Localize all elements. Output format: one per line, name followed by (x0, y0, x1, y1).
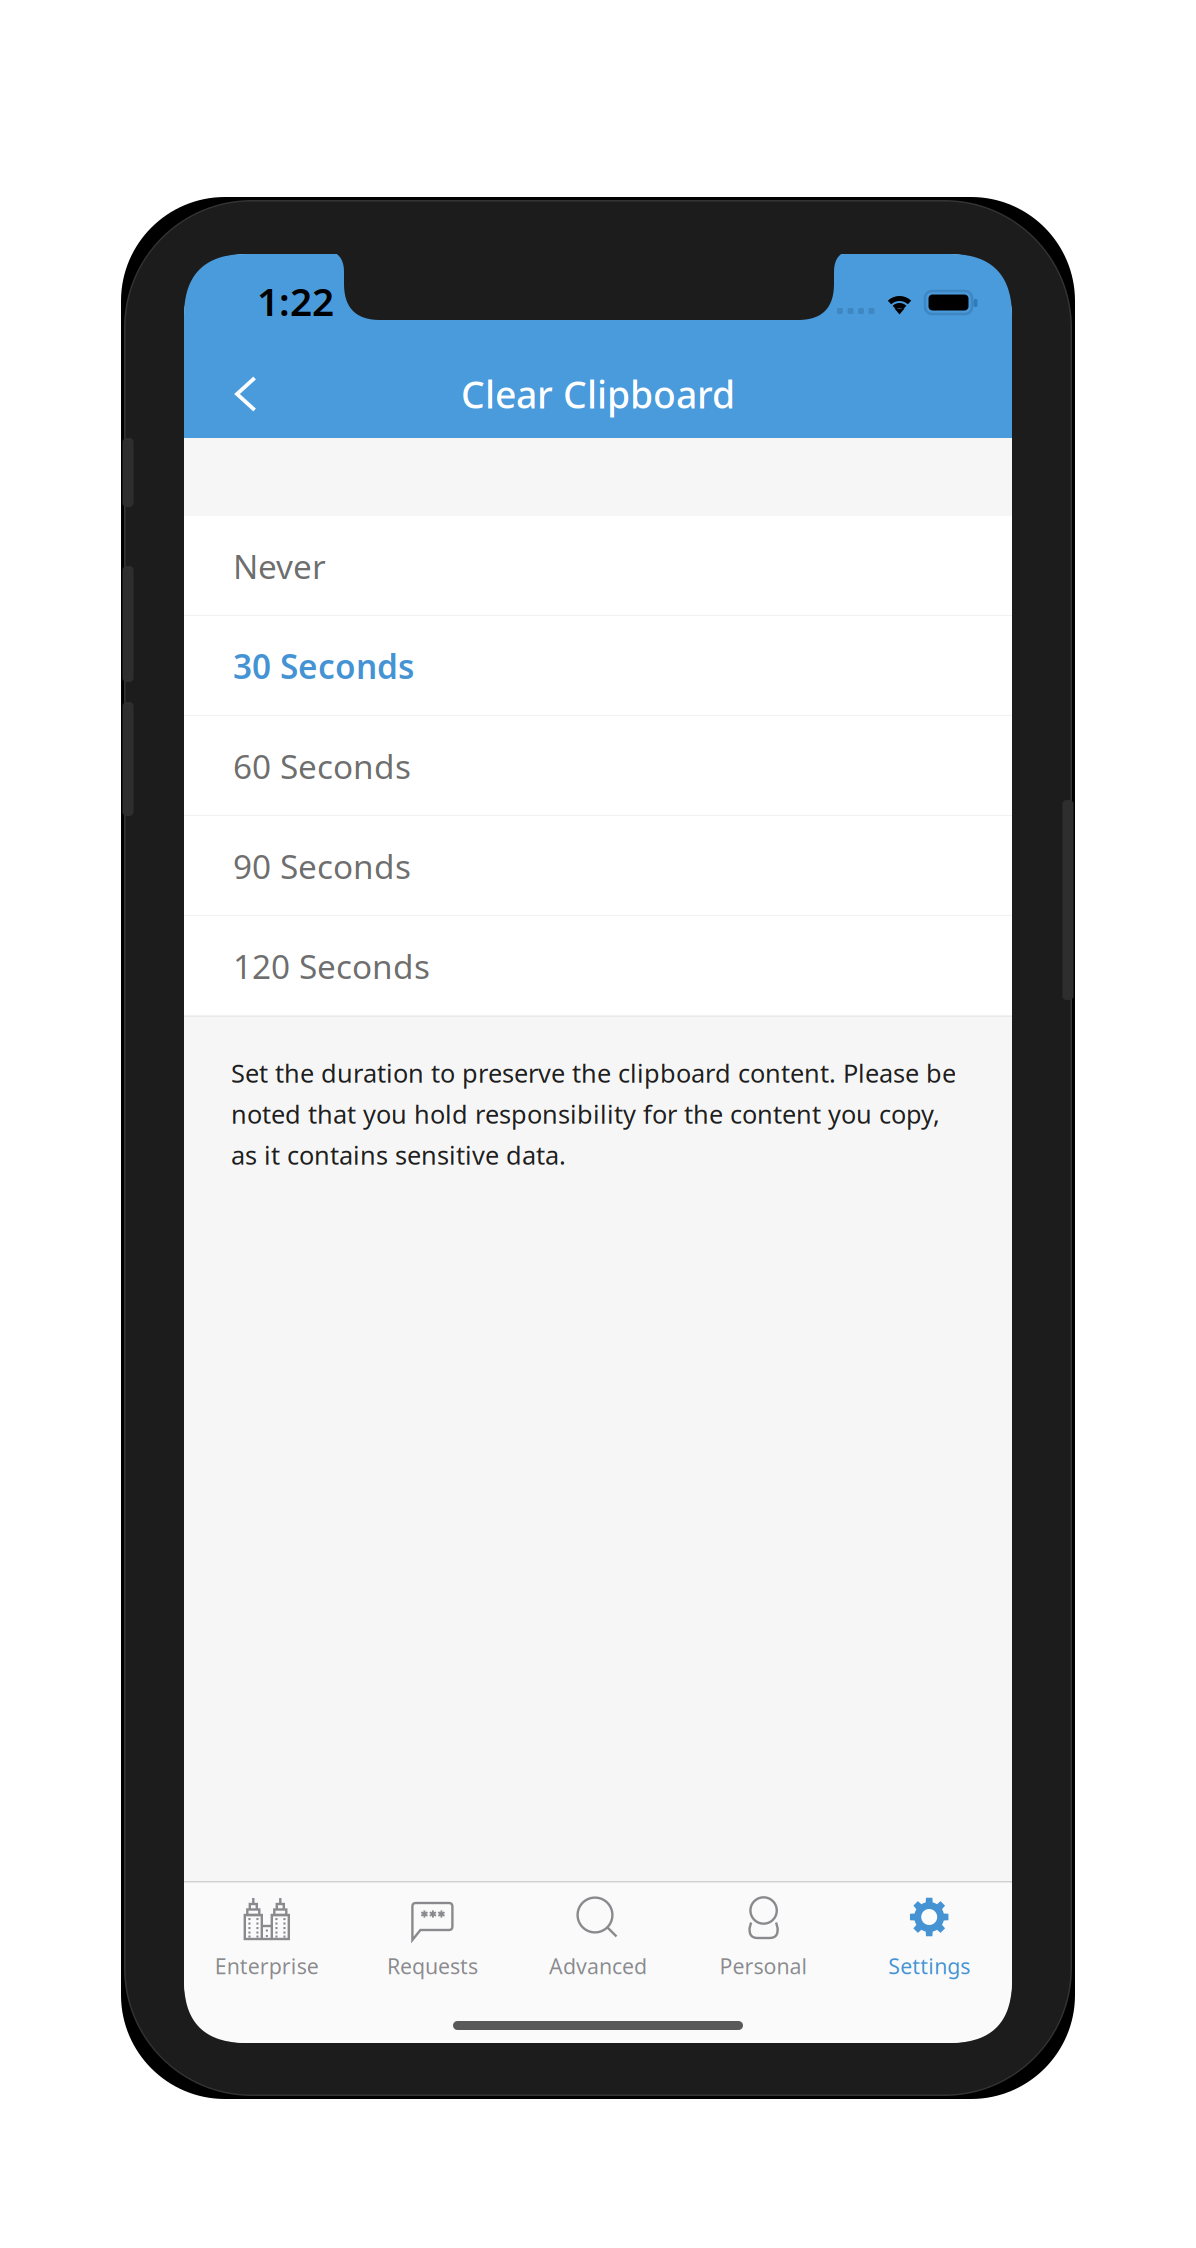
staticText: 90 Seconds (233, 844, 411, 888)
button[interactable]: Enterprise (184, 1879, 350, 1999)
staticText: 30 Seconds (233, 644, 414, 688)
button[interactable]: Advanced (515, 1879, 681, 1999)
button[interactable]: 90 Seconds (184, 816, 1012, 916)
staticText: 60 Seconds (233, 744, 411, 788)
button[interactable]: Requests (350, 1879, 515, 1999)
staticText: as it contains sensitive data. (231, 1138, 566, 1172)
button[interactable]: Personal (681, 1879, 846, 1999)
staticText: Set the duration to preserve the clipboa… (231, 1056, 956, 1090)
staticText: Personal (720, 1952, 808, 1980)
button[interactable]: 60 Seconds (184, 716, 1012, 816)
staticText: Clear Clipboard (461, 369, 735, 419)
button[interactable]: 30 Seconds (184, 616, 1012, 716)
button[interactable]: 120 Seconds (184, 916, 1012, 1016)
staticText: 1:22 (257, 275, 334, 327)
staticText: noted that you hold responsibility for t… (231, 1097, 940, 1131)
button[interactable]: Never (184, 516, 1012, 616)
staticText: 120 Seconds (233, 944, 430, 988)
button[interactable]: Back (200, 348, 292, 440)
staticText: Advanced (549, 1952, 647, 1980)
button[interactable]: Settings (846, 1879, 1012, 1999)
staticText: Requests (387, 1952, 478, 1980)
staticText: Enterprise (215, 1952, 319, 1980)
staticText: Settings (888, 1952, 970, 1980)
staticText: Never (233, 544, 326, 588)
